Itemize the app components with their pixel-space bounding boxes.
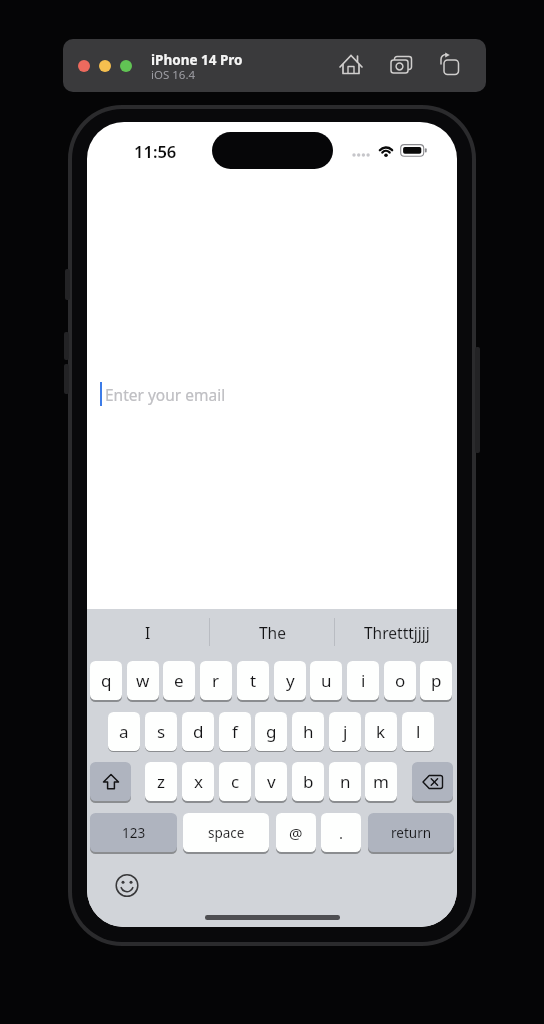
button[interactable]: b [292,762,324,801]
staticText: w [136,669,150,692]
button[interactable]: w [127,661,159,700]
button[interactable]: k [365,712,397,751]
button[interactable]: r [200,661,232,700]
button[interactable] [90,762,131,801]
staticText: s [157,720,166,743]
button[interactable] [435,50,467,82]
staticText: i [361,669,366,692]
staticText: y [286,669,295,692]
button[interactable]: space [183,813,269,852]
button[interactable]: return [368,813,454,852]
staticText: m [373,770,389,793]
staticText: o [395,669,406,692]
staticText: a [119,720,129,743]
staticText: q [101,669,112,692]
button[interactable]: h [292,712,324,751]
staticText: d [193,720,204,743]
button[interactable]: n [329,762,361,801]
staticText: 11:56 [134,140,177,162]
button[interactable] [111,870,143,902]
button[interactable]: j [329,712,361,751]
button[interactable]: e [163,661,195,700]
button[interactable] [120,60,132,72]
staticText: @ [289,823,303,843]
staticText: j [343,720,348,743]
button[interactable]: x [182,762,214,801]
button[interactable]: a [108,712,140,751]
button[interactable] [78,60,90,72]
staticText: r [212,669,220,692]
button[interactable]: p [420,661,452,700]
staticText: p [431,669,442,692]
button[interactable]: m [365,762,397,801]
staticText: x [194,770,203,793]
button[interactable] [412,762,453,801]
staticText: Enter your email [105,384,226,405]
button[interactable]: . [321,813,361,852]
button[interactable]: The [221,617,323,647]
button[interactable]: u [310,661,342,700]
button[interactable] [335,49,367,81]
staticText: . [339,823,344,843]
staticText: g [266,720,277,743]
staticText: iOS 16.4 [151,67,196,82]
button[interactable] [97,378,447,410]
staticText: I [145,622,151,643]
staticText: l [416,720,421,743]
staticText: b [303,770,314,793]
staticText: v [267,770,276,793]
button[interactable]: Thretttjjjj [346,617,448,647]
staticText: 123 [122,824,146,842]
button[interactable]: c [219,762,251,801]
staticText: e [174,669,184,692]
button[interactable]: i [347,661,379,700]
staticText: The [259,622,286,643]
button[interactable]: l [402,712,434,751]
staticText: u [321,669,332,692]
staticText: h [303,720,314,743]
staticText: iPhone 14 Pro [151,51,243,69]
button[interactable]: f [219,712,251,751]
button[interactable]: v [255,762,287,801]
button[interactable] [386,50,418,82]
staticText: t [250,669,257,692]
staticText: c [231,770,240,793]
staticText: return [391,824,432,842]
button[interactable]: z [145,762,177,801]
staticText: space [208,824,245,842]
button[interactable]: @ [276,813,316,852]
button[interactable]: s [145,712,177,751]
button[interactable]: y [274,661,306,700]
staticText: k [376,720,386,743]
button[interactable]: g [255,712,287,751]
button[interactable]: q [90,661,122,700]
button[interactable] [99,60,111,72]
staticText: z [157,770,165,793]
button[interactable]: I [97,617,199,647]
button[interactable]: t [237,661,269,700]
staticText: Thretttjjjj [364,622,430,643]
button[interactable]: o [384,661,416,700]
staticText: f [232,720,238,743]
staticText: n [340,770,351,793]
button[interactable]: 123 [90,813,177,852]
button[interactable]: d [182,712,214,751]
